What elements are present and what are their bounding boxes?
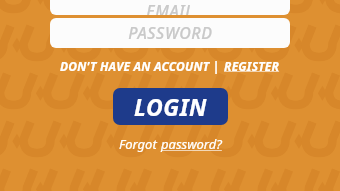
staticText: DON'T HAVE AN ACCOUNT | (60, 58, 220, 74)
staticText: LOGIN (134, 91, 207, 122)
staticText: REGISTER (224, 58, 280, 74)
staticText: password? (161, 135, 222, 153)
button[interactable]: Forgot (117, 134, 224, 154)
button[interactable]: EMAIL (50, 0, 290, 15)
button[interactable]: DON'T HAVE AN ACCOUNT | (58, 57, 282, 75)
button[interactable]: PASSWORD (50, 18, 290, 48)
staticText: EMAIL (146, 0, 194, 15)
button[interactable]: LOGIN (113, 88, 228, 125)
staticText: Forgot (119, 135, 161, 153)
staticText: PASSWORD (128, 22, 213, 44)
